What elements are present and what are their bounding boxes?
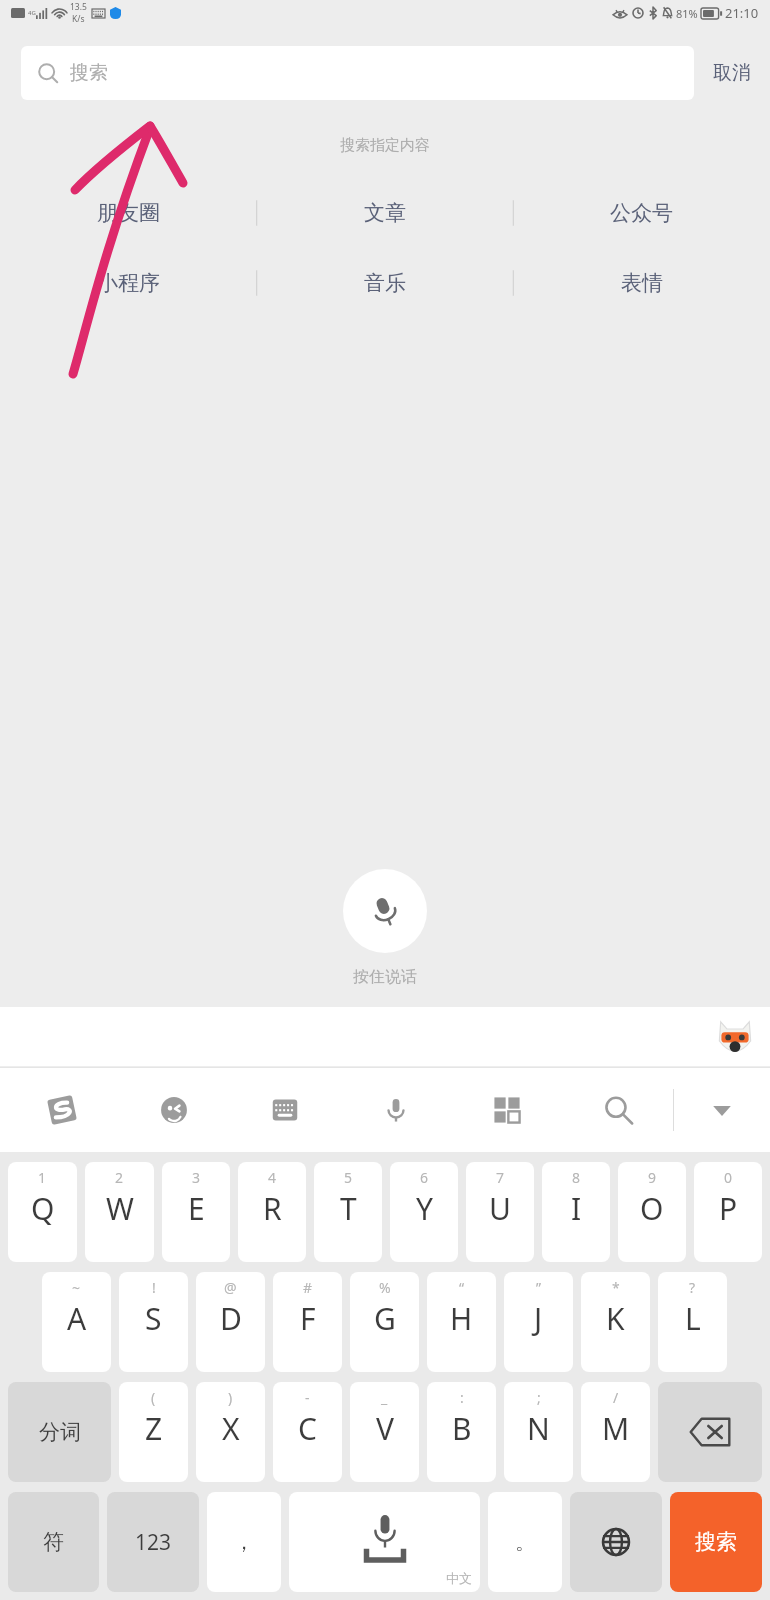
button[interactable]: 5	[314, 1162, 382, 1262]
button[interactable]: 删除	[658, 1382, 762, 1482]
button[interactable]: )	[196, 1382, 265, 1482]
button[interactable]: ~	[42, 1272, 111, 1372]
button[interactable]: 123	[107, 1492, 199, 1592]
button[interactable]: 搜索	[670, 1492, 762, 1592]
button[interactable]: /	[581, 1382, 650, 1482]
button[interactable]: 符	[8, 1492, 99, 1592]
staticText: 4	[268, 1168, 277, 1187]
staticText: F	[300, 1298, 316, 1339]
staticText: ?	[689, 1278, 696, 1297]
button[interactable]: 小程序	[0, 263, 256, 303]
staticText: 搜索指定内容	[0, 136, 770, 155]
button[interactable]: 朋友圈	[0, 193, 256, 233]
staticText: 7	[496, 1168, 505, 1187]
button[interactable]: 切换语言	[570, 1492, 662, 1592]
button[interactable]: 搜索	[21, 46, 694, 100]
button[interactable]: 分词	[8, 1382, 111, 1482]
button[interactable]: 9	[618, 1162, 686, 1262]
button[interactable]: 空格	[289, 1492, 480, 1592]
button[interactable]: 收起键盘	[674, 1068, 770, 1152]
button[interactable]: _	[350, 1382, 419, 1482]
staticText: H	[450, 1298, 473, 1339]
button[interactable]: ;	[504, 1382, 573, 1482]
button[interactable]: !	[119, 1272, 188, 1372]
button[interactable]: 输入法	[6, 1068, 118, 1152]
button[interactable]: 表情	[513, 263, 770, 303]
button[interactable]: 2	[85, 1162, 154, 1262]
button[interactable]: 4	[238, 1162, 306, 1262]
button[interactable]: -	[273, 1382, 342, 1482]
button[interactable]: @	[196, 1272, 265, 1372]
staticText: R	[263, 1188, 282, 1229]
button[interactable]: 按住说话	[343, 869, 427, 953]
staticText: K/s	[72, 13, 85, 25]
button[interactable]: ”	[504, 1272, 573, 1372]
staticText: !	[152, 1278, 156, 1297]
button[interactable]: %	[350, 1272, 419, 1372]
staticText: 13.5	[70, 1, 87, 13]
staticText: 音乐	[364, 270, 406, 296]
button[interactable]: #	[273, 1272, 342, 1372]
button[interactable]: 搜索	[562, 1068, 673, 1152]
staticText: P	[719, 1188, 738, 1229]
staticText: 按住说话	[353, 967, 417, 987]
staticText: Q	[31, 1188, 55, 1229]
staticText: C	[298, 1408, 317, 1449]
button[interactable]: 6	[390, 1162, 458, 1262]
staticText: 取消	[713, 61, 751, 85]
staticText: Z	[145, 1408, 163, 1449]
button[interactable]: *	[581, 1272, 650, 1372]
staticText: ，	[234, 1530, 254, 1555]
button[interactable]: :	[427, 1382, 496, 1482]
button[interactable]: “	[427, 1272, 496, 1372]
staticText: T	[340, 1188, 357, 1229]
staticText: 81%	[676, 6, 698, 21]
button[interactable]: 7	[466, 1162, 534, 1262]
button[interactable]: 语音	[340, 1068, 451, 1152]
staticText: @	[224, 1278, 237, 1297]
staticText: A	[67, 1298, 87, 1339]
staticText: 9	[648, 1168, 657, 1187]
staticText: 2	[115, 1168, 124, 1187]
staticText: ~	[72, 1278, 81, 1297]
staticText: X	[222, 1408, 240, 1449]
button[interactable]: ?	[658, 1272, 727, 1372]
button[interactable]: 8	[542, 1162, 610, 1262]
staticText: U	[489, 1188, 511, 1229]
staticText: 搜索	[70, 61, 108, 85]
staticText: 5	[344, 1168, 353, 1187]
staticText: S	[145, 1298, 162, 1339]
button[interactable]: 音乐	[256, 263, 513, 303]
staticText: K	[606, 1298, 625, 1339]
staticText: %	[379, 1278, 391, 1297]
button[interactable]: 表情	[718, 1017, 752, 1057]
button[interactable]: 3	[162, 1162, 230, 1262]
staticText: E	[188, 1188, 205, 1229]
staticText: B	[452, 1408, 472, 1449]
staticText: “	[459, 1278, 465, 1297]
button[interactable]: 文章	[256, 193, 513, 233]
staticText: ”	[536, 1278, 542, 1297]
staticText: 朋友圈	[97, 200, 160, 226]
staticText: 小程序	[97, 270, 160, 296]
button[interactable]: 键盘	[229, 1068, 340, 1152]
staticText: 搜索	[695, 1529, 737, 1555]
button[interactable]: 0	[694, 1162, 762, 1262]
staticText: W	[106, 1188, 134, 1229]
button[interactable]: 表情	[118, 1068, 229, 1152]
staticText: 。	[515, 1530, 535, 1555]
button[interactable]: (	[119, 1382, 188, 1482]
staticText: G	[374, 1298, 396, 1339]
staticText: :	[460, 1388, 464, 1407]
staticText: 4G	[28, 9, 36, 17]
button[interactable]: 1	[8, 1162, 77, 1262]
button[interactable]: ，	[207, 1492, 281, 1592]
button[interactable]: 。	[488, 1492, 562, 1592]
staticText: (	[151, 1388, 156, 1407]
button[interactable]: 公众号	[513, 193, 770, 233]
button[interactable]: 取消	[694, 53, 770, 93]
staticText: D	[220, 1298, 242, 1339]
staticText: #	[303, 1278, 313, 1297]
button[interactable]: 更多	[451, 1068, 562, 1152]
staticText: J	[534, 1298, 543, 1339]
